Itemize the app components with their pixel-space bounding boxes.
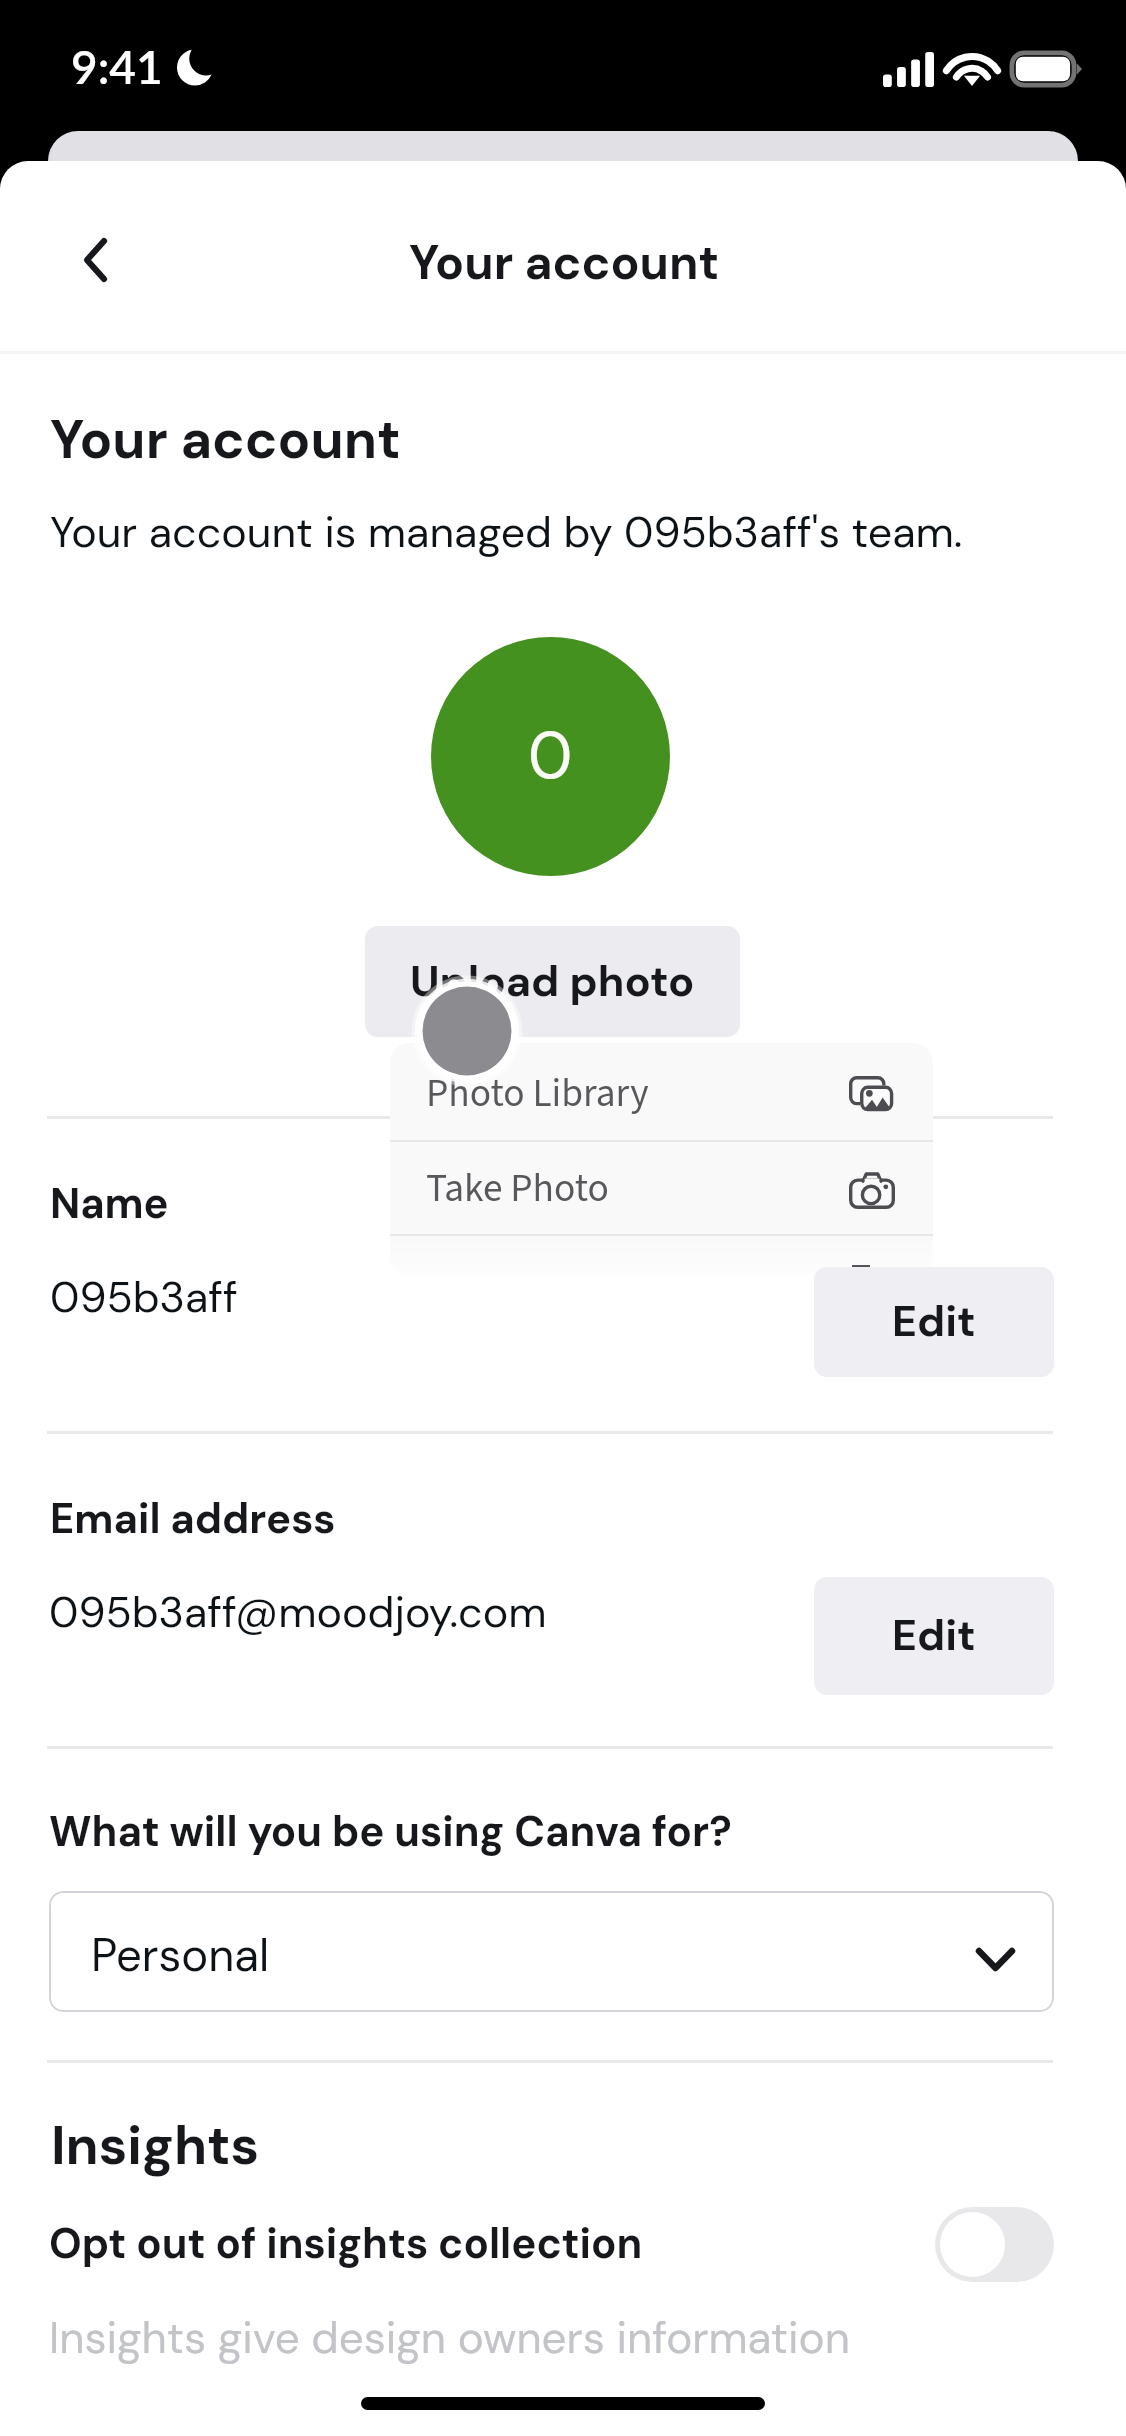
staticText: Upload photo — [410, 955, 695, 1009]
staticText: 0 — [528, 716, 573, 797]
staticText: Your account is managed by 095b3aff's te… — [50, 506, 963, 560]
staticText: Edit — [892, 1295, 976, 1349]
staticText: 9:41 — [71, 40, 163, 94]
staticText: Name — [50, 1178, 169, 1230]
button[interactable]: Edit — [814, 1267, 1054, 1377]
button[interactable]: Profile photo — [431, 637, 670, 876]
staticText: 095b3aff — [50, 1271, 238, 1325]
button[interactable]: Photo Library — [390, 1046, 933, 1143]
staticText: Your account — [50, 407, 401, 475]
staticText: Edit — [892, 1609, 976, 1663]
button[interactable]: Upload photo — [365, 926, 740, 1037]
staticText: Opt out of insights collection — [49, 2218, 643, 2270]
button[interactable]: Back — [43, 211, 143, 309]
button[interactable] — [49, 1891, 1054, 2012]
staticText: 095b3aff@moodjoy.com — [49, 1586, 547, 1640]
staticText: Your account — [409, 233, 720, 293]
button[interactable]: Edit — [814, 1577, 1054, 1695]
staticText: Personal — [91, 1928, 270, 1985]
staticText: Email address — [50, 1493, 336, 1545]
button[interactable]: Take Photo — [390, 1143, 933, 1237]
staticText: Insights — [51, 2113, 259, 2180]
staticText: Take Photo — [426, 1166, 609, 1214]
staticText: Photo Library — [426, 1071, 649, 1119]
staticText: Insights give design owners information — [49, 2311, 850, 2366]
staticText: What will you be using Canva for? — [49, 1806, 732, 1858]
button[interactable]: Opt out of insights collection — [935, 2207, 1054, 2282]
